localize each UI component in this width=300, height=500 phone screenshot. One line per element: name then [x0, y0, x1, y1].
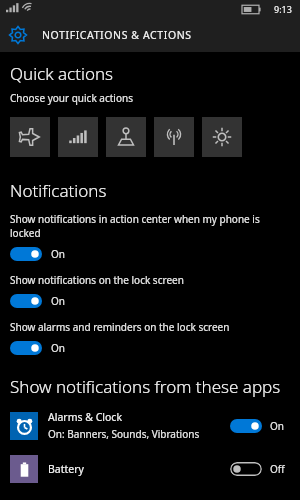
- staticText: Show notifications from these apps: [10, 375, 281, 398]
- staticText: Show notifications in action center when…: [10, 212, 290, 240]
- staticText: Quick actions: [10, 62, 114, 85]
- button[interactable]: Show notifications in action center when…: [0, 212, 300, 261]
- button[interactable]: Toggle off: [230, 462, 262, 476]
- button[interactable]: Toggle on: [230, 419, 262, 433]
- staticText: Notifications: [10, 179, 107, 202]
- button[interactable]: Project: [106, 117, 146, 157]
- staticText: Choose your quick actions: [10, 91, 133, 105]
- button[interactable]: Toggle on: [10, 247, 42, 261]
- button[interactable]: Show notifications on the lock screen: [0, 273, 300, 308]
- staticText: Show alarms and reminders on the lock sc…: [10, 320, 230, 334]
- staticText: On: [51, 341, 65, 355]
- button[interactable]: Toggle on: [10, 341, 42, 355]
- staticText: On: Banners, Sounds, Vibrations: [48, 427, 200, 441]
- staticText: NOTIFICATIONS & ACTIONS: [42, 28, 192, 42]
- button[interactable]: Brightness: [202, 117, 242, 157]
- button[interactable]: Settings: [0, 18, 300, 52]
- staticText: On: [51, 247, 65, 261]
- button[interactable]: Show alarms and reminders on the lock sc…: [0, 320, 300, 355]
- button[interactable]: Alarms & Clock: [0, 410, 300, 441]
- other: Settings: [8, 25, 28, 45]
- button[interactable]: Airplane mode: [10, 117, 50, 157]
- staticText: On: [51, 294, 65, 308]
- staticText: Show notifications on the lock screen: [10, 273, 184, 287]
- button[interactable]: Mobile hotspot: [154, 117, 194, 157]
- button[interactable]: Battery: [0, 455, 300, 483]
- staticText: 9:13: [274, 3, 292, 15]
- staticText: Battery: [48, 462, 84, 476]
- staticText: Off: [270, 462, 285, 476]
- staticText: Alarms & Clock: [48, 410, 122, 424]
- staticText: On: [270, 419, 284, 433]
- button[interactable]: Cellular: [58, 117, 98, 157]
- button[interactable]: Toggle on: [10, 294, 42, 308]
